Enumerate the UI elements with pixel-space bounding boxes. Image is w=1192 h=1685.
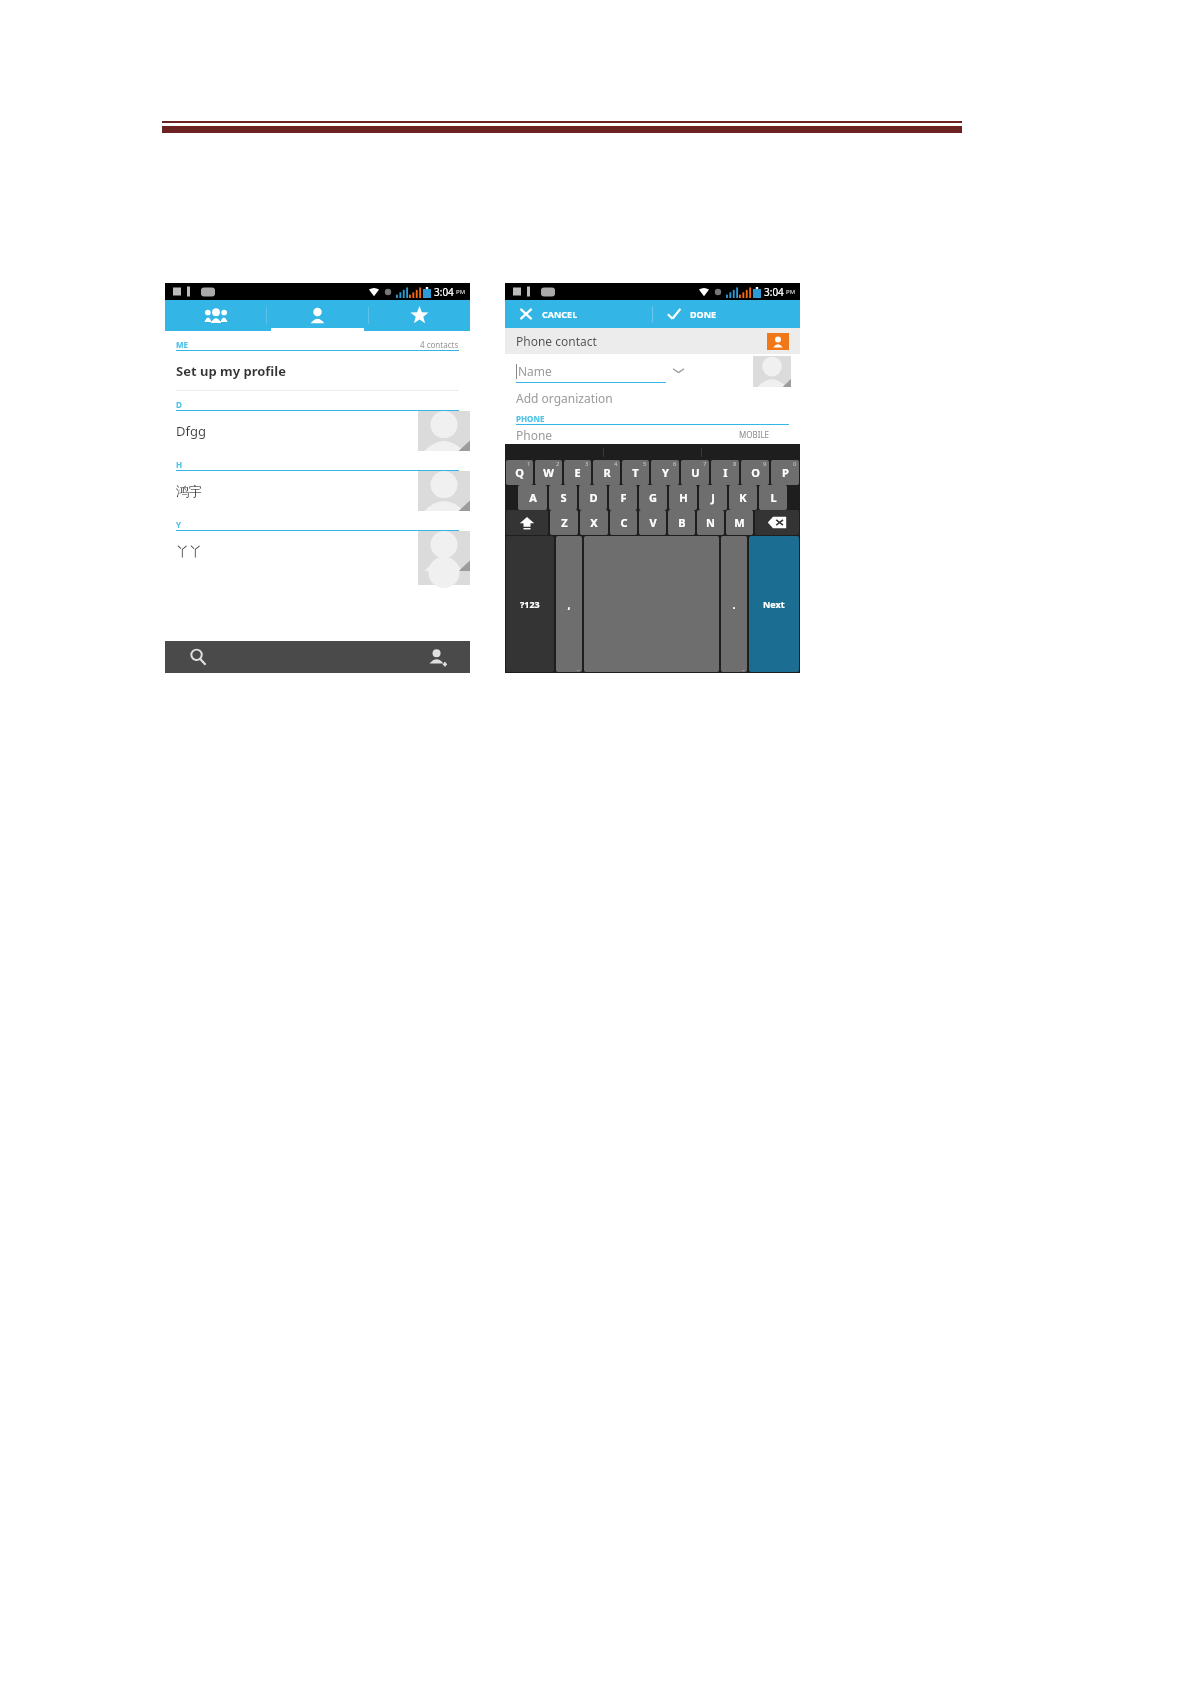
staticText: 4 <box>614 460 618 468</box>
staticText: C <box>620 515 628 530</box>
staticText: A <box>529 490 537 505</box>
staticText: O <box>751 465 760 480</box>
staticText: V <box>649 515 657 530</box>
button[interactable]: U <box>681 460 709 485</box>
staticText: Y <box>662 465 669 480</box>
staticText: Name <box>518 363 552 379</box>
button[interactable]: V <box>639 510 666 535</box>
button[interactable]: Q <box>506 460 533 485</box>
staticText: D <box>176 399 182 410</box>
button[interactable]: Phone <box>505 425 800 444</box>
staticText: 9 <box>763 460 767 468</box>
button[interactable]: H <box>669 485 697 510</box>
button[interactable]: X <box>580 510 608 535</box>
staticText: MOBILE <box>739 429 770 440</box>
staticText: DONE <box>690 308 717 320</box>
button[interactable]: Add contact <box>424 644 450 670</box>
button[interactable]: Favorites <box>369 300 470 331</box>
staticText: B <box>678 515 686 530</box>
staticText: Y <box>176 519 182 530</box>
staticText: 丫丫 <box>176 543 202 559</box>
staticText: 3:04 <box>434 285 454 299</box>
staticText: G <box>649 490 657 505</box>
staticText: W <box>543 465 554 480</box>
staticText: S <box>560 490 567 505</box>
button[interactable]: Phone contact <box>505 328 800 354</box>
button[interactable]: Backspace <box>755 510 799 535</box>
button[interactable]: Groups <box>165 300 266 331</box>
button[interactable]: S <box>549 485 577 510</box>
button[interactable]: A <box>518 485 547 510</box>
button[interactable]: Shift <box>506 510 548 535</box>
button[interactable]: . <box>721 536 747 672</box>
staticText: 鸿宇 <box>176 483 202 499</box>
button[interactable]: E <box>564 460 591 485</box>
button[interactable]: N <box>697 510 724 535</box>
staticText: R <box>603 465 611 480</box>
staticText: 7 <box>703 460 707 468</box>
staticText: Phone <box>516 427 553 443</box>
button[interactable]: O <box>741 460 769 485</box>
button[interactable]: Name <box>516 363 664 379</box>
staticText: . <box>732 597 736 612</box>
staticText: 3 <box>585 460 589 468</box>
button[interactable]: 鸿宇 <box>165 471 470 511</box>
staticText: Q <box>515 465 524 480</box>
staticText: K <box>739 490 747 505</box>
staticText: PM <box>786 288 796 296</box>
button[interactable]: Set up my profile <box>165 351 470 391</box>
staticText: _ <box>742 664 745 672</box>
staticText: 6 <box>673 460 677 468</box>
button[interactable]: Add organization <box>505 387 800 409</box>
button[interactable]: L <box>759 485 787 510</box>
button[interactable]: Dfgg <box>165 411 470 451</box>
button[interactable]: P <box>771 460 799 485</box>
button[interactable]: G <box>639 485 667 510</box>
button[interactable]: B <box>668 510 695 535</box>
staticText: 4 contacts <box>420 339 459 350</box>
staticText: D <box>589 490 598 505</box>
staticText: ME <box>176 339 189 350</box>
button[interactable]: 丫丫 <box>165 531 470 571</box>
staticText: Phone contact <box>516 333 597 349</box>
staticText: T <box>632 465 639 480</box>
staticText: E <box>574 465 581 480</box>
staticText: U <box>691 465 700 480</box>
staticText: X <box>590 515 598 530</box>
button[interactable]: Search <box>185 644 211 670</box>
staticText: P <box>782 465 789 480</box>
staticText: Z <box>561 515 568 530</box>
staticText: I <box>723 465 728 480</box>
button[interactable]: Z <box>550 510 578 535</box>
button[interactable]: DONE <box>666 300 800 328</box>
button[interactable]: I <box>711 460 739 485</box>
button[interactable]: Y <box>651 460 679 485</box>
staticText: Dfgg <box>176 422 206 440</box>
button[interactable]: , <box>556 536 582 672</box>
staticText: 8 <box>733 460 737 468</box>
button[interactable]: D <box>579 485 607 510</box>
staticText: _ <box>577 664 580 672</box>
button[interactable]: CANCEL <box>518 300 652 328</box>
button[interactable]: J <box>699 485 727 510</box>
button[interactable]: K <box>729 485 757 510</box>
button[interactable]: ?123 <box>506 536 554 672</box>
button[interactable]: T <box>622 460 649 485</box>
button[interactable]: Next <box>749 536 799 672</box>
staticText: PHONE <box>516 413 545 424</box>
button[interactable]: All contacts <box>267 300 368 331</box>
button[interactable]: W <box>535 460 562 485</box>
staticText: PM <box>456 288 466 296</box>
staticText: F <box>620 490 627 505</box>
button[interactable]: C <box>610 510 637 535</box>
staticText: M <box>734 515 745 530</box>
staticText: J <box>711 490 715 505</box>
staticText: 5 <box>643 460 647 468</box>
button[interactable]: F <box>609 485 637 510</box>
button[interactable]: M <box>726 510 753 535</box>
button[interactable]: R <box>593 460 620 485</box>
staticText: ?123 <box>520 598 540 610</box>
staticText: 1 <box>527 460 531 468</box>
staticText: 0 <box>793 460 797 468</box>
